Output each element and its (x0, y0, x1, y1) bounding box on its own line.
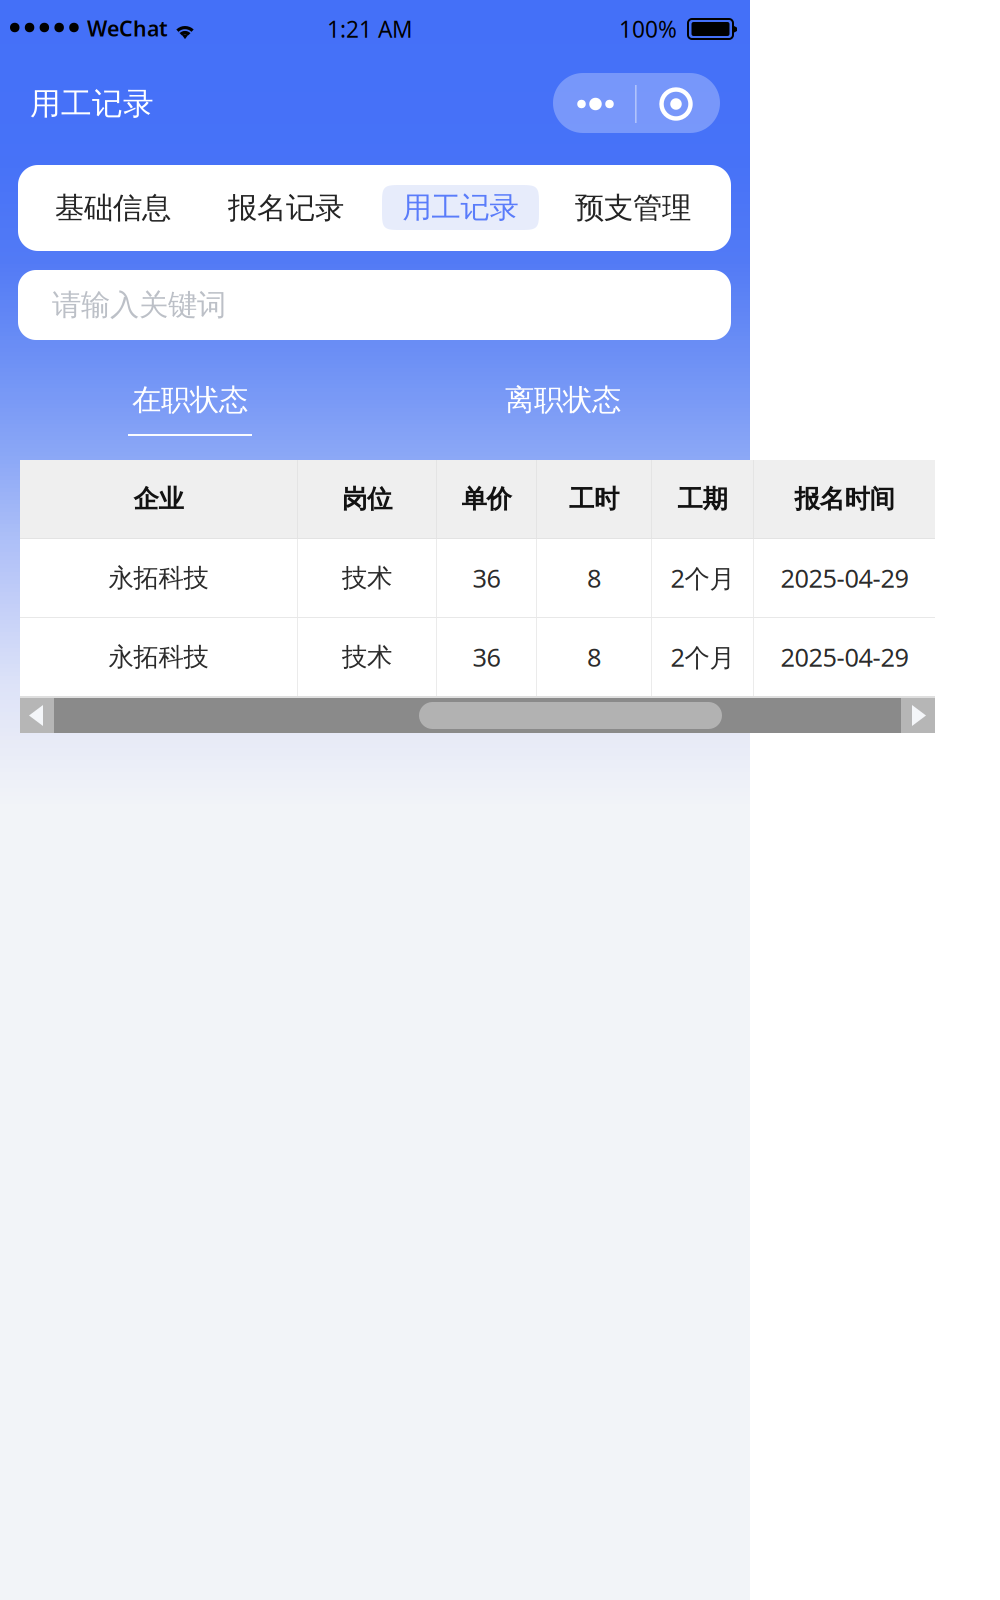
staticText: 永拓科技 (108, 641, 208, 672)
staticText: 请输入关键词 (52, 287, 226, 323)
button[interactable]: 在职状态 (96, 380, 284, 436)
staticText: 2个月 (670, 561, 734, 595)
staticText: 100% (619, 14, 677, 44)
staticText: 永拓科技 (108, 562, 208, 593)
button[interactable]: 预支管理 (572, 178, 694, 238)
staticText: 用工记录 (30, 85, 154, 123)
staticText: 技术 (342, 562, 392, 593)
staticText: 报名时间 (794, 483, 894, 514)
staticText: 2个月 (670, 640, 734, 674)
staticText: 预支管理 (575, 190, 691, 226)
staticText: 2025-04-29 (780, 640, 908, 674)
button[interactable]: 用工记录 (382, 185, 539, 230)
button[interactable]: 离职状态 (469, 380, 657, 420)
staticText: 用工记录 (402, 189, 518, 225)
staticText: 企业 (133, 483, 183, 514)
staticText: 报名记录 (228, 190, 344, 226)
button[interactable]: 报名记录 (225, 178, 347, 238)
staticText: 工时 (569, 483, 619, 514)
staticText: 在职状态 (132, 382, 248, 418)
staticText: 基础信息 (55, 190, 171, 226)
staticText: 8 (587, 640, 601, 674)
staticText: WeChat (87, 14, 168, 42)
staticText: 单价 (461, 483, 511, 514)
staticText: 8 (587, 561, 601, 595)
staticText: 36 (472, 561, 500, 595)
button[interactable]: Menu and close mini program (553, 73, 720, 133)
staticText: 岗位 (342, 483, 392, 514)
staticText: 工期 (677, 483, 727, 514)
staticText: 36 (472, 640, 500, 674)
button[interactable]: 请输入关键词 (18, 270, 731, 340)
staticText: 技术 (342, 641, 392, 672)
button[interactable]: Scroll table right (901, 698, 935, 733)
staticText: 1:21 AM (327, 14, 413, 44)
staticText: 离职状态 (505, 382, 621, 418)
button[interactable]: Scroll table left (20, 698, 54, 733)
staticText: 2025-04-29 (780, 561, 908, 595)
button[interactable]: 基础信息 (52, 178, 174, 238)
